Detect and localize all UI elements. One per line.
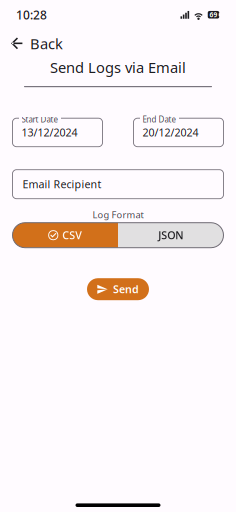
button[interactable]: 20/12/2024	[133, 118, 223, 147]
staticText: Send Logs via Email	[50, 57, 186, 77]
button[interactable]: CSV	[12, 223, 118, 248]
staticText: Send	[113, 282, 139, 296]
staticText: Log Format	[92, 208, 143, 221]
button[interactable]: Email Recipient	[12, 170, 223, 199]
staticText: JSON	[158, 228, 183, 242]
staticText: Back	[30, 34, 63, 53]
staticText: End Date	[142, 114, 176, 125]
staticText: CSV	[62, 228, 82, 242]
button[interactable]: 13/12/2024	[12, 118, 102, 147]
button[interactable]: JSON	[118, 223, 223, 248]
button[interactable]: Back	[0, 29, 74, 57]
staticText: Email Recipient	[22, 177, 101, 191]
staticText: Start Date	[21, 114, 58, 125]
staticText: 13/12/2024	[21, 125, 77, 140]
staticText: 69	[209, 10, 217, 19]
button[interactable]: Send	[87, 278, 149, 300]
staticText: 10:28	[16, 7, 47, 23]
staticText: 20/12/2024	[142, 125, 198, 140]
